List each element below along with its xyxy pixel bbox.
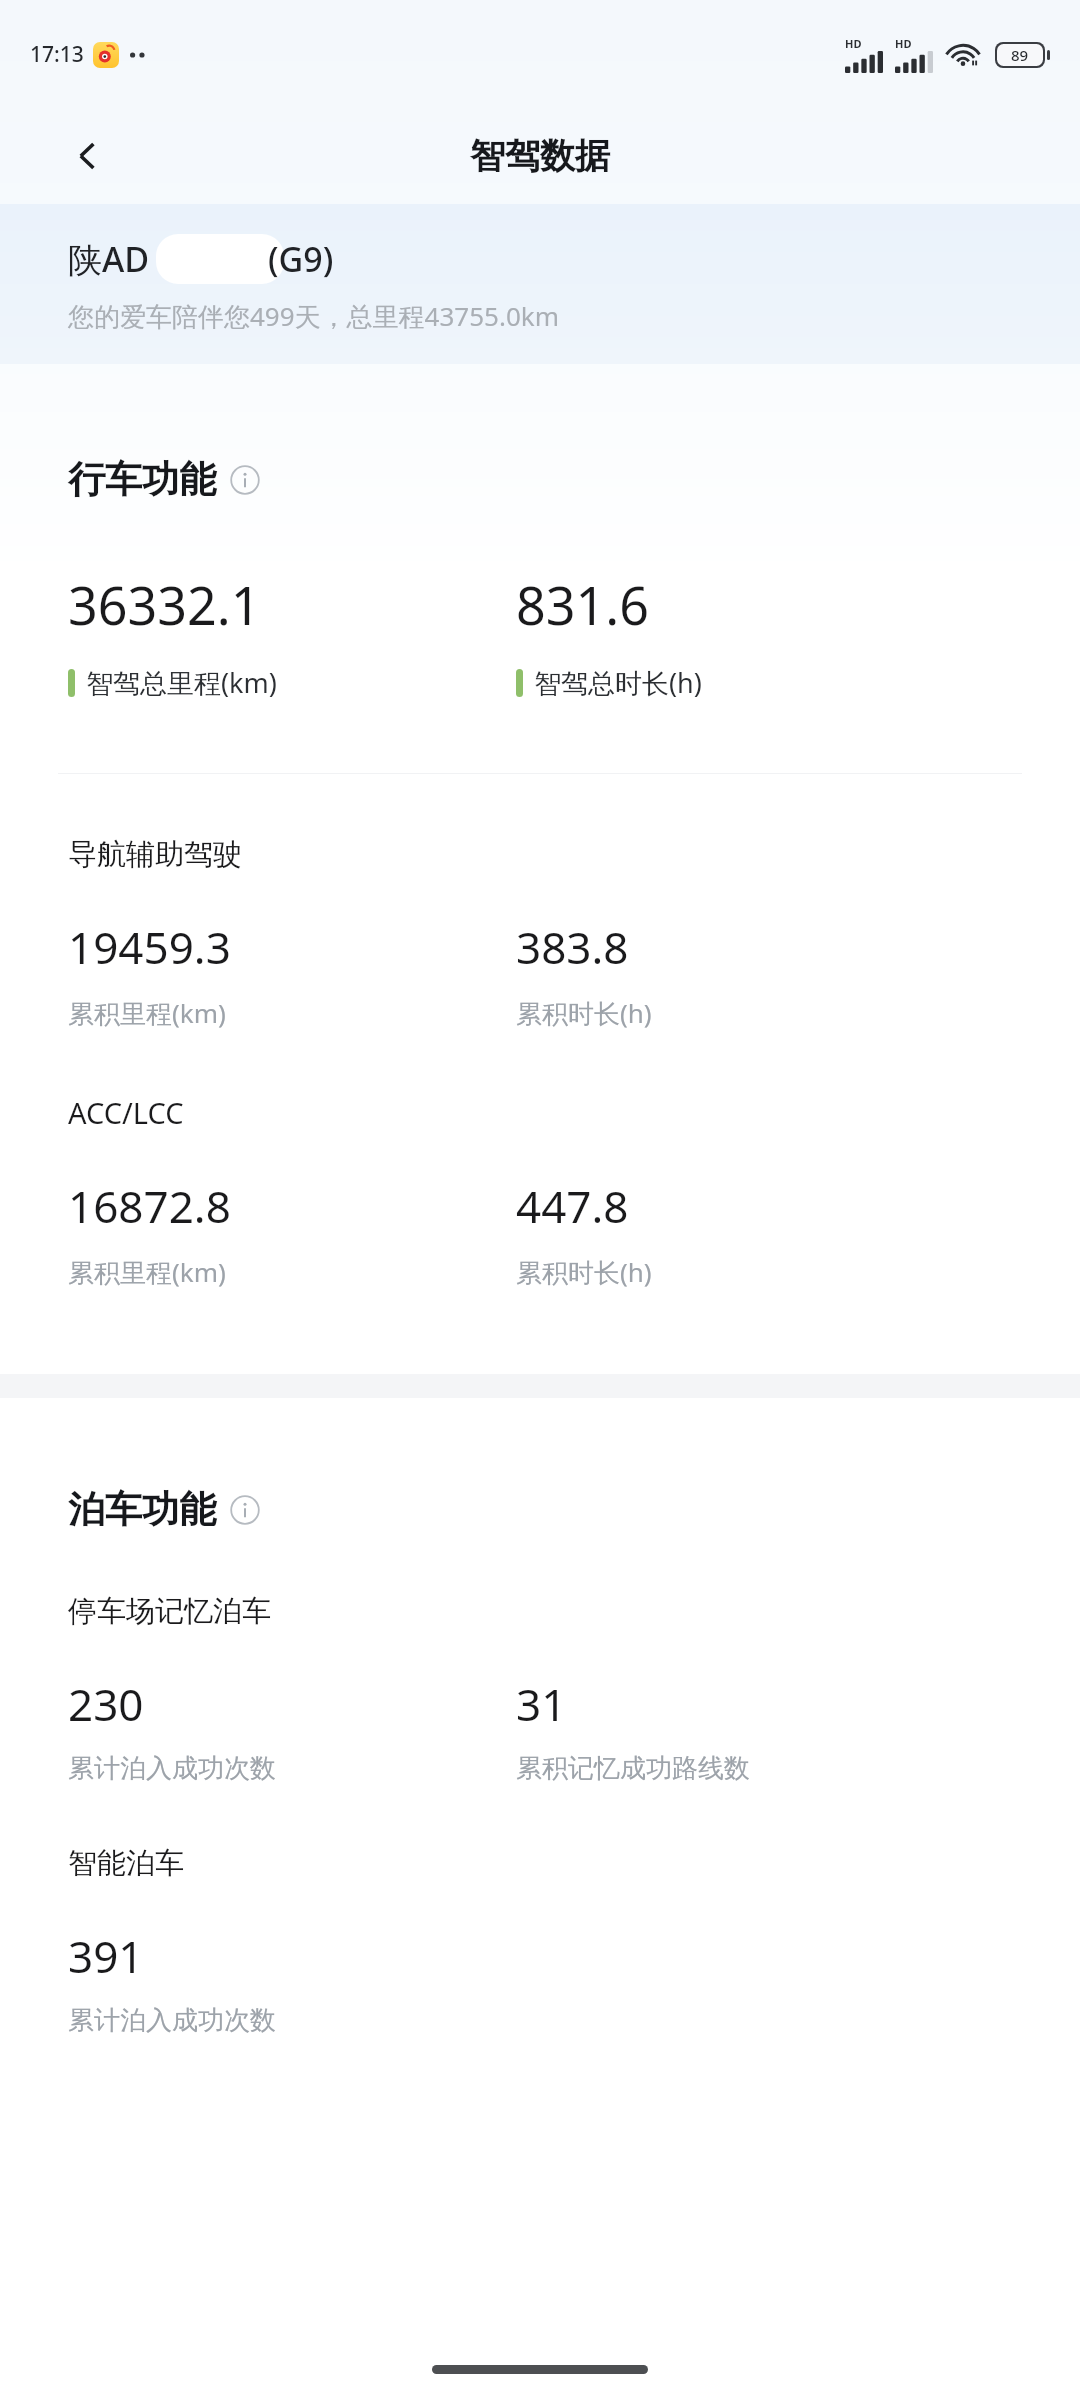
staticText: 智驾总时长(h) xyxy=(534,664,702,701)
staticText: 230 xyxy=(68,1674,144,1734)
button[interactable]: Back xyxy=(56,124,120,188)
staticText: (G9) xyxy=(268,236,334,282)
staticText: 累积时长(h) xyxy=(516,1254,652,1290)
staticText: HD xyxy=(895,36,912,51)
staticText: 36332.1 xyxy=(68,569,261,640)
button[interactable]: 泊车功能 xyxy=(68,1486,1080,1533)
staticText: 智驾总里程(km) xyxy=(86,664,277,701)
button[interactable]: 陕AD xyxy=(0,204,1080,364)
staticText: 19459.3 xyxy=(68,917,231,977)
staticText: 17:13 xyxy=(30,40,84,69)
staticText: 383.8 xyxy=(516,917,629,977)
staticText: 89 xyxy=(1011,45,1029,65)
staticText: 累积里程(km) xyxy=(68,1254,226,1290)
staticText: 16872.8 xyxy=(68,1176,231,1236)
staticText: 831.6 xyxy=(516,569,649,640)
staticText: 累计泊入成功次数 xyxy=(68,1752,276,1785)
staticText: 行车功能 xyxy=(68,456,216,503)
staticText: 累积里程(km) xyxy=(68,995,226,1031)
staticText: 31 xyxy=(516,1674,567,1734)
staticText: 导航辅助驾驶 xyxy=(68,836,242,873)
staticText: 累积时长(h) xyxy=(516,995,652,1031)
staticText: 391 xyxy=(68,1926,144,1986)
staticText: 您的爱车陪伴您499天，总里程43755.0km xyxy=(68,298,560,334)
staticText: HD xyxy=(845,36,862,51)
staticText: 陕AD xyxy=(68,236,150,282)
staticText: 智驾数据 xyxy=(470,134,610,178)
staticText: 累计泊入成功次数 xyxy=(68,2004,276,2037)
staticText: 停车场记忆泊车 xyxy=(68,1593,271,1630)
staticText: 泊车功能 xyxy=(68,1486,216,1533)
staticText: 智能泊车 xyxy=(68,1845,184,1882)
button[interactable]: 行车功能 xyxy=(68,456,1080,503)
staticText: 累积记忆成功路线数 xyxy=(516,1752,750,1785)
staticText: 447.8 xyxy=(516,1176,629,1236)
staticText: ACC/LCC xyxy=(68,1093,184,1132)
